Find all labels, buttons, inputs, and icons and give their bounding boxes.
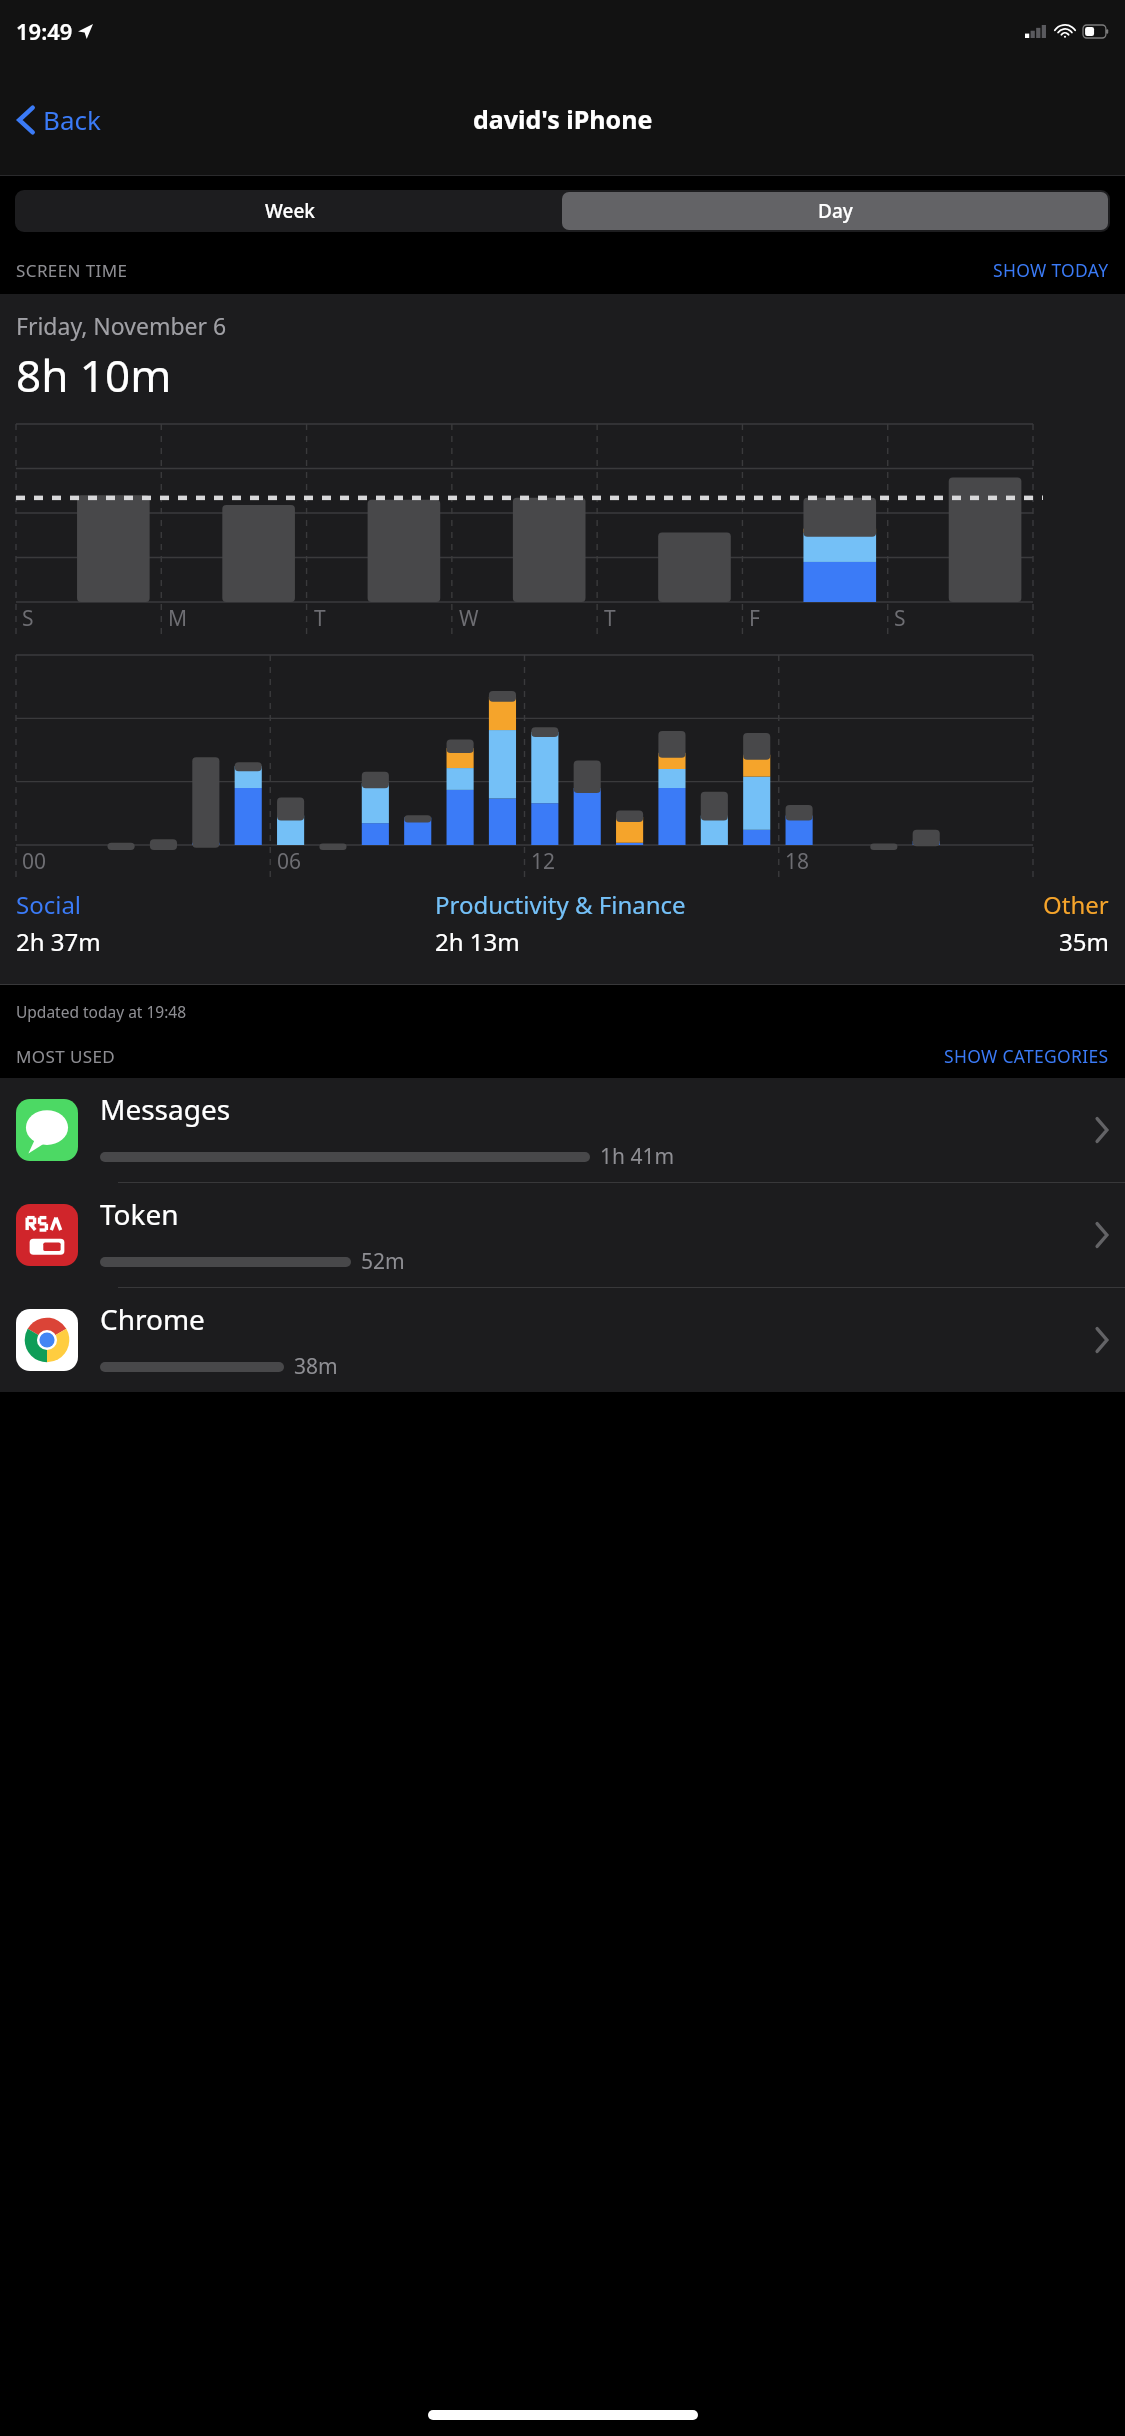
staticText: david's iPhone bbox=[473, 102, 653, 136]
button[interactable]: Chrome bbox=[0, 1288, 1125, 1392]
staticText: Productivity & Finance bbox=[435, 888, 686, 921]
staticText: 2h 13m bbox=[435, 925, 520, 958]
staticText: 38m bbox=[294, 1352, 338, 1381]
button[interactable]: SHOW TODAY bbox=[993, 258, 1109, 282]
staticText: Day bbox=[818, 198, 853, 224]
staticText: Chrome bbox=[100, 1300, 205, 1338]
staticText: 1h 41m bbox=[600, 1142, 675, 1171]
staticText: 06 bbox=[277, 847, 302, 876]
staticText: Week bbox=[265, 198, 315, 224]
staticText: T bbox=[314, 604, 326, 633]
staticText: 00 bbox=[22, 847, 47, 876]
staticText: 12 bbox=[531, 847, 556, 876]
staticText: Friday, November 6 bbox=[16, 310, 227, 341]
staticText: Messages bbox=[100, 1090, 231, 1128]
staticText: 19:49 bbox=[16, 16, 73, 46]
button[interactable]: Week bbox=[17, 192, 562, 230]
staticText: 18 bbox=[785, 847, 810, 876]
staticText: 35m bbox=[1059, 925, 1109, 958]
staticText: SHOW CATEGORIES bbox=[944, 1044, 1109, 1068]
button[interactable]: SHOW CATEGORIES bbox=[944, 1044, 1109, 1068]
staticText: T bbox=[604, 604, 616, 633]
staticText: S bbox=[894, 604, 906, 633]
staticText: SCREEN TIME bbox=[16, 259, 128, 282]
staticText: Back bbox=[43, 102, 101, 137]
other: Open Token bbox=[1095, 1222, 1109, 1248]
staticText: M bbox=[168, 604, 188, 633]
staticText: 52m bbox=[361, 1247, 405, 1276]
button[interactable]: Day bbox=[562, 192, 1108, 230]
button[interactable]: Messages bbox=[0, 1078, 1125, 1182]
staticText: Token bbox=[100, 1195, 179, 1233]
staticText: W bbox=[459, 604, 479, 633]
staticText: S bbox=[22, 604, 34, 633]
staticText: SHOW TODAY bbox=[993, 258, 1109, 282]
staticText: Updated today at 19:48 bbox=[16, 1001, 187, 1022]
staticText: MOST USED bbox=[16, 1045, 116, 1068]
staticText: 2h 37m bbox=[16, 925, 101, 958]
staticText: 8h 10m bbox=[16, 345, 172, 405]
staticText: Social bbox=[16, 888, 82, 921]
button[interactable]: Back bbox=[14, 96, 105, 143]
staticText: Other bbox=[1043, 888, 1109, 921]
other: Open Chrome bbox=[1095, 1327, 1109, 1353]
staticText: F bbox=[749, 604, 760, 633]
button[interactable]: Token bbox=[0, 1183, 1125, 1287]
other: Open Messages bbox=[1095, 1117, 1109, 1143]
